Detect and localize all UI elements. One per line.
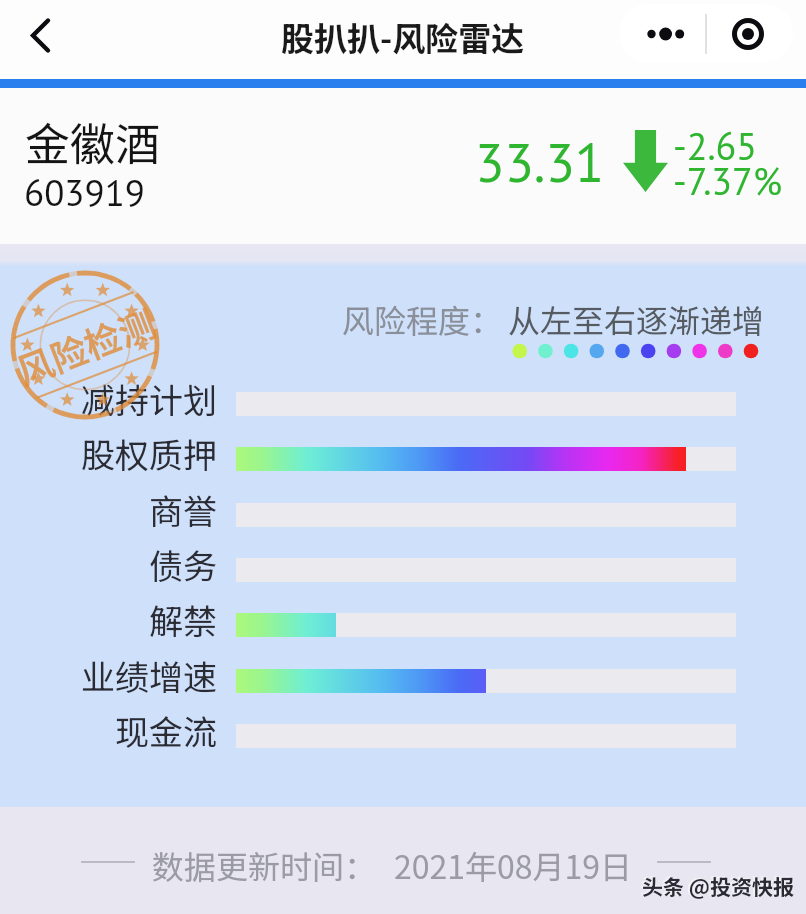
staticText: 解禁: [0, 595, 217, 644]
staticText: 从左至右逐渐递增: [508, 296, 765, 342]
staticText: 603919: [24, 168, 145, 216]
staticText: 商誉: [0, 485, 217, 534]
staticText: -7.37%: [673, 156, 783, 205]
staticText: 股扒扒-风险雷达: [281, 13, 525, 61]
staticText: 业绩增速: [0, 651, 217, 700]
staticText: 股权质押: [0, 429, 217, 478]
staticText: 头条 @投资快报: [640, 870, 792, 900]
staticText: 2021年08月19日: [394, 842, 633, 888]
staticText: 风险检测: [8, 295, 162, 395]
staticText: 33.31: [475, 127, 605, 197]
staticText: 减持计划: [0, 374, 217, 423]
staticText: 风险程度：: [342, 296, 503, 342]
staticText: 现金流: [0, 706, 217, 755]
button[interactable]: Menu: [619, 4, 793, 62]
button[interactable]: Back: [8, 4, 72, 68]
staticText: -2.65: [673, 121, 757, 170]
staticText: 债务: [0, 540, 217, 589]
staticText: 数据更新时间：: [152, 842, 377, 888]
staticText: 头条 @投资快报: [642, 871, 794, 901]
staticText: 金徽酒: [25, 109, 161, 174]
